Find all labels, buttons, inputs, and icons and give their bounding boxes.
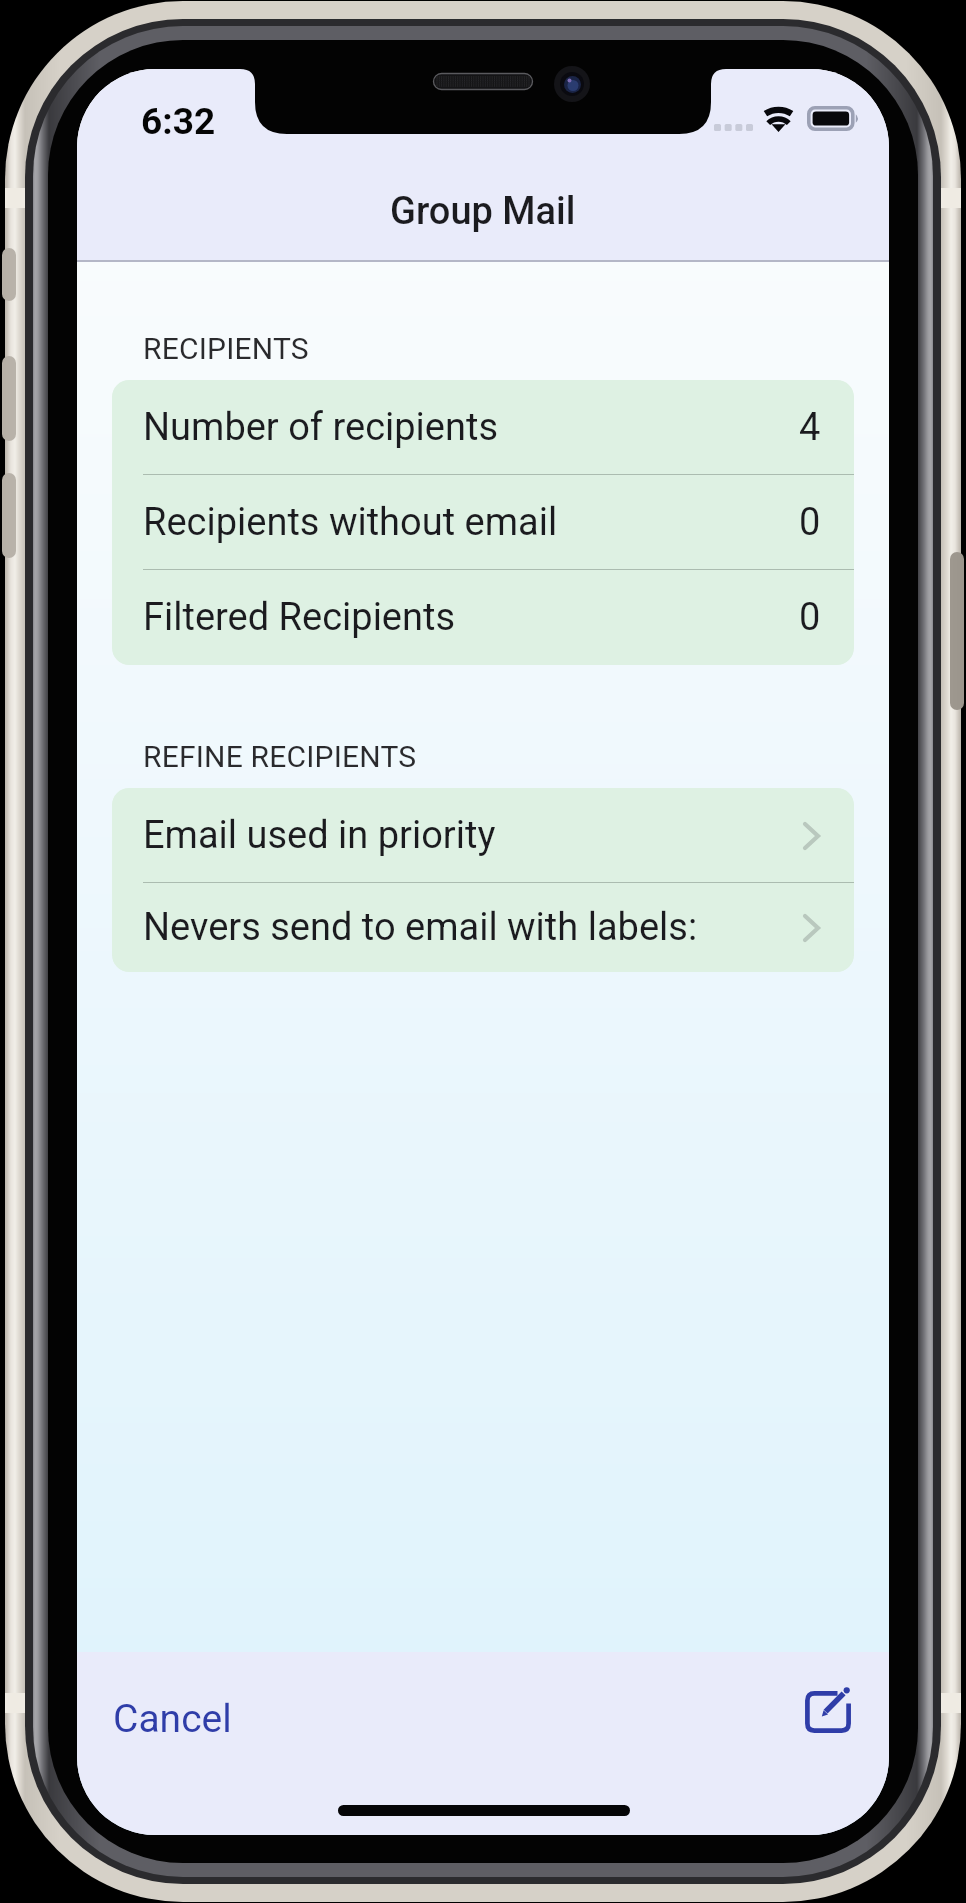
staticText: 0 [799, 500, 821, 545]
staticText: RECIPIENTS [143, 331, 309, 366]
button[interactable]: Nevers send to email with labels: [112, 883, 854, 972]
staticText: Email used in priority [143, 813, 496, 858]
staticText: 0 [799, 595, 821, 640]
button[interactable]: Compose new message [788, 1670, 868, 1750]
staticText: Recipients without email [143, 500, 558, 545]
staticText: 6:32 [141, 100, 216, 143]
staticText: Nevers send to email with labels: [143, 905, 698, 950]
staticText: REFINE RECIPIENTS [143, 739, 417, 774]
staticText: 4 [799, 405, 821, 450]
button[interactable]: Recipients without email [112, 475, 854, 570]
button[interactable]: Filtered Recipients [112, 570, 854, 665]
staticText: Cancel [113, 1696, 232, 1742]
button[interactable]: Number of recipients [112, 380, 854, 475]
button[interactable]: Email used in priority [112, 788, 854, 883]
staticText: Filtered Recipients [143, 595, 456, 640]
staticText: Group Mail [390, 189, 576, 234]
button[interactable]: Cancel [97, 1680, 248, 1758]
staticText: Number of recipients [143, 405, 499, 450]
